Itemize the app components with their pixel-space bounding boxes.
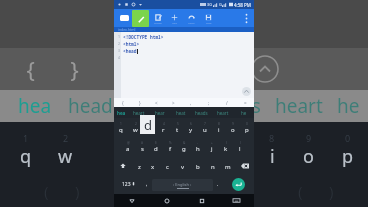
- button[interactable]: Collapse: [242, 87, 251, 96]
- staticText: m: [225, 163, 231, 171]
- button[interactable]: ,: [182, 98, 200, 107]
- button[interactable]: heart: [212, 107, 233, 118]
- staticText: he: [337, 93, 360, 119]
- button[interactable]: b: [190, 156, 205, 175]
- staticText: /: [226, 100, 228, 106]
- button[interactable]: Menu: [116, 10, 132, 26]
- staticText: 1: [120, 122, 122, 126]
- button[interactable]: heads: [191, 107, 212, 118]
- staticText: (: [44, 181, 49, 201]
- button[interactable]: n: [205, 156, 220, 175]
- staticText: hea: [18, 93, 52, 119]
- staticText: }: [139, 100, 141, 106]
- staticText: c: [166, 163, 169, 171]
- button[interactable]: Back: [114, 194, 149, 207]
- staticText: 5: [177, 122, 179, 126]
- staticText: index.html: [118, 27, 136, 32]
- button[interactable]: >: [165, 98, 182, 107]
- staticText: Add: [172, 21, 177, 24]
- staticText: 3: [114, 48, 120, 53]
- button[interactable]: Add: [166, 10, 183, 27]
- staticText: d: [154, 145, 158, 153]
- button[interactable]: 4: [156, 118, 170, 137]
- button[interactable]: 6: [184, 118, 198, 137]
- staticText: 2: [63, 132, 69, 144]
- staticText: 8: [269, 132, 275, 144]
- staticText: h: [196, 145, 200, 153]
- button[interactable]: m: [220, 156, 235, 175]
- staticText: g: [182, 145, 186, 153]
- button[interactable]: More options: [240, 10, 252, 27]
- button[interactable]: z: [132, 156, 146, 175]
- button[interactable]: hea: [114, 107, 129, 118]
- button[interactable]: he: [233, 107, 254, 118]
- button[interactable]: %: [163, 137, 177, 156]
- staticText: <!DOCTYPE html>: [123, 34, 164, 40]
- button[interactable]: 123: [114, 175, 142, 194]
- staticText: (: [298, 181, 303, 201]
- staticText: >: [172, 100, 175, 106]
- button[interactable]: Create: [149, 10, 166, 27]
- button[interactable]: Undo: [183, 10, 200, 27]
- button[interactable]: x: [146, 156, 160, 175]
- staticText: {: [122, 100, 124, 106]
- staticText: x: [151, 163, 155, 171]
- button[interactable]: Edit: [132, 10, 149, 27]
- staticText: ): [75, 181, 80, 201]
- button[interactable]: 9: [226, 118, 240, 137]
- button[interactable]: -: [191, 137, 205, 156]
- staticText: &: [183, 141, 186, 145]
- staticText: s: [141, 145, 144, 153]
- button[interactable]: <: [148, 98, 165, 107]
- button[interactable]: Shift: [114, 156, 132, 175]
- button[interactable]: 5: [170, 118, 184, 137]
- staticText: -: [197, 141, 199, 145]
- staticText: <head: [123, 48, 137, 54]
- staticText: 3: [148, 122, 150, 126]
- staticText: 9: [306, 132, 312, 144]
- button[interactable]: $: [149, 137, 163, 156]
- staticText: ,: [146, 181, 148, 188]
- staticText: +: [211, 141, 213, 145]
- button[interactable]: Period: [213, 175, 223, 194]
- button[interactable]: ): [233, 137, 247, 156]
- button[interactable]: +: [205, 137, 219, 156]
- button[interactable]: Hide keyboard: [219, 194, 254, 207]
- button[interactable]: heat: [170, 107, 191, 118]
- button[interactable]: 7: [198, 118, 212, 137]
- staticText: j: [211, 145, 213, 153]
- button[interactable]: 3: [142, 118, 156, 137]
- button[interactable]: heart: [129, 107, 149, 118]
- button[interactable]: v: [175, 156, 190, 175]
- button[interactable]: =: [236, 98, 254, 107]
- button[interactable]: Comma: [142, 175, 152, 194]
- staticText: %: [169, 141, 172, 145]
- button[interactable]: Backspace: [235, 156, 254, 175]
- button[interactable]: 0: [240, 118, 254, 137]
- button[interactable]: Recent apps: [184, 194, 219, 207]
- button[interactable]: (: [219, 137, 233, 156]
- staticText: {: [24, 54, 38, 84]
- button[interactable]: c: [160, 156, 175, 175]
- button[interactable]: /: [218, 98, 236, 107]
- staticText: @: [127, 141, 130, 145]
- staticText: n: [211, 163, 215, 171]
- button[interactable]: #: [135, 137, 149, 156]
- button[interactable]: &: [177, 137, 191, 156]
- button[interactable]: 8: [212, 118, 226, 137]
- button[interactable]: 1: [114, 118, 128, 137]
- button[interactable]: Home: [149, 194, 184, 207]
- staticText: r: [162, 126, 165, 134]
- button[interactable]: Enter: [225, 177, 252, 192]
- button[interactable]: Space: [152, 179, 213, 191]
- button[interactable]: 2: [128, 118, 142, 137]
- button[interactable]: ;: [200, 98, 218, 107]
- staticText: Create: [154, 21, 162, 24]
- staticText: o: [231, 126, 235, 134]
- button[interactable]: }: [131, 98, 148, 107]
- button[interactable]: {: [114, 98, 131, 107]
- staticText: i: [270, 144, 275, 169]
- button[interactable]: @: [121, 137, 135, 156]
- button[interactable]: hear: [149, 107, 170, 118]
- button[interactable]: Save: [200, 10, 217, 27]
